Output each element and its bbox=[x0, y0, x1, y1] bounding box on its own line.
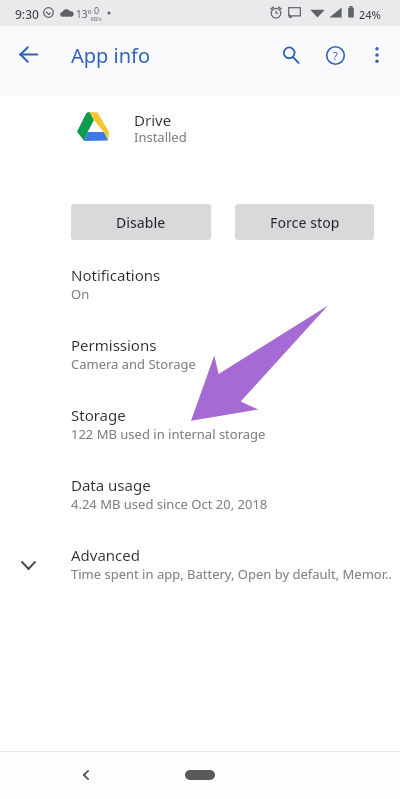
button[interactable]: More options bbox=[353, 31, 400, 79]
staticText: 4.24 MB used since Oct 20, 2018 bbox=[71, 495, 268, 513]
button[interactable]: Data usage bbox=[0, 462, 400, 532]
staticText: Disable bbox=[116, 213, 166, 232]
staticText: On bbox=[71, 285, 90, 303]
button[interactable]: Back bbox=[4, 30, 52, 78]
staticText: App info bbox=[71, 42, 151, 69]
staticText: Force stop bbox=[270, 213, 340, 232]
staticText: 9:30 bbox=[15, 6, 39, 22]
staticText: 13° bbox=[76, 7, 92, 21]
staticText: Installed bbox=[134, 128, 187, 146]
staticText: KB/s bbox=[91, 16, 102, 23]
staticText: Advanced bbox=[71, 545, 141, 565]
button[interactable]: Force stop bbox=[235, 204, 374, 240]
staticText: Data usage bbox=[71, 475, 151, 495]
staticText: Camera and Storage bbox=[71, 355, 196, 373]
staticText: Drive bbox=[134, 110, 172, 130]
staticText: Time spent in app, Battery, Open by defa… bbox=[71, 565, 392, 583]
staticText: Notifications bbox=[71, 265, 161, 285]
button[interactable]: Storage bbox=[0, 392, 400, 462]
button[interactable]: Back bbox=[62, 751, 110, 799]
button[interactable]: App info bbox=[71, 42, 151, 69]
button[interactable]: Help bbox=[311, 31, 359, 79]
staticText: Permissions bbox=[71, 335, 157, 355]
button[interactable]: Home bbox=[185, 770, 215, 780]
staticText: 122 MB used in internal storage bbox=[71, 425, 266, 443]
staticText: ? bbox=[333, 48, 338, 63]
button[interactable]: Permissions bbox=[0, 322, 400, 392]
staticText: 24% bbox=[359, 7, 381, 22]
button[interactable]: Expand advanced bbox=[4, 541, 52, 589]
button[interactable]: Disable bbox=[71, 204, 211, 240]
button[interactable]: Advanced bbox=[0, 532, 400, 602]
button[interactable]: Notifications bbox=[0, 252, 400, 322]
staticText: 0 bbox=[94, 4, 100, 16]
staticText: Storage bbox=[71, 405, 126, 425]
button[interactable]: Search bbox=[267, 31, 315, 79]
